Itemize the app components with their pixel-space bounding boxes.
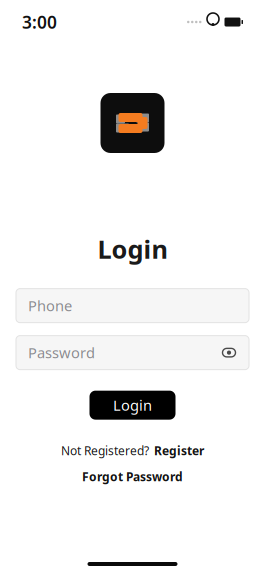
staticText: Login: [113, 395, 152, 415]
staticText: Password: [28, 343, 95, 362]
button[interactable]: Login: [89, 391, 175, 420]
staticText: Not Registered?: [61, 443, 149, 458]
staticText: 3:00: [22, 10, 57, 33]
staticText: Forgot Password: [82, 469, 183, 484]
staticText: Phone: [28, 296, 72, 315]
staticText: Register: [154, 443, 204, 458]
button[interactable]: Forgot Password: [82, 469, 183, 484]
button[interactable]: Register: [154, 443, 204, 458]
button[interactable]: Show password: [221, 345, 237, 361]
staticText: Login: [97, 232, 167, 266]
